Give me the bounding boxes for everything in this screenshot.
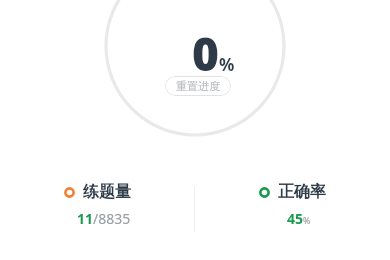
staticText: 45%	[287, 209, 311, 228]
other: 正确率	[259, 187, 270, 198]
staticText: 重置进度	[176, 79, 220, 93]
staticText: 正确率	[278, 182, 326, 202]
staticText: 11/8835	[77, 209, 131, 228]
other: 练题量	[64, 187, 75, 198]
button[interactable]: 正确率	[195, 182, 390, 244]
staticText: 练题量	[83, 182, 131, 202]
button[interactable]: 重置进度	[165, 76, 231, 96]
button[interactable]: 练题量	[0, 182, 194, 244]
staticText: 0%	[192, 22, 235, 85]
